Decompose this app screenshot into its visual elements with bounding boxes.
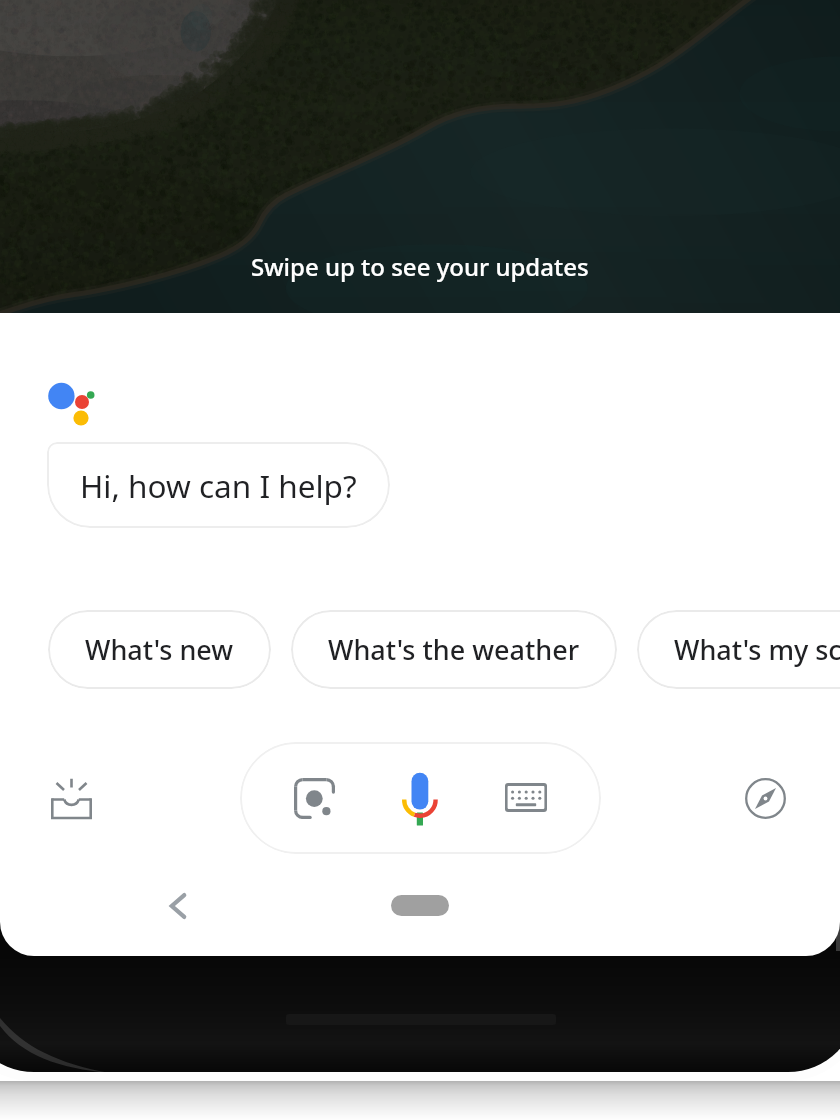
button[interactable]: What's my schedule [637,610,840,689]
button[interactable]: Voice search [386,763,454,831]
button[interactable]: Google Lens [280,764,348,832]
button[interactable]: Updates [35,762,108,835]
staticText: What's my schedule [674,631,840,668]
button[interactable]: Back [150,878,205,933]
button[interactable]: Hi, how can I help? [47,442,390,528]
staticText: Hi, how can I help? [80,464,357,507]
button[interactable]: What's new [48,610,271,689]
button[interactable]: Explore [729,762,802,835]
button[interactable]: Home [391,895,449,916]
button[interactable]: What's the weather [291,610,617,689]
button[interactable]: Keyboard [492,763,560,831]
staticText: What's the weather [328,631,580,668]
staticText: What's new [85,631,234,668]
staticText: Swipe up to see your updates [251,250,589,283]
